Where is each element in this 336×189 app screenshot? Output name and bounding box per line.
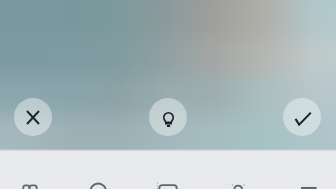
button[interactable]: Done (283, 98, 321, 136)
button[interactable]: Suggest edit (149, 98, 187, 136)
button[interactable]: Crop (134, 151, 201, 189)
button[interactable]: Tools (204, 151, 271, 189)
button[interactable]: Adjust (64, 151, 131, 189)
button[interactable]: Suggestions (0, 151, 60, 189)
button[interactable]: More (275, 151, 336, 189)
button[interactable]: Close (14, 98, 52, 136)
